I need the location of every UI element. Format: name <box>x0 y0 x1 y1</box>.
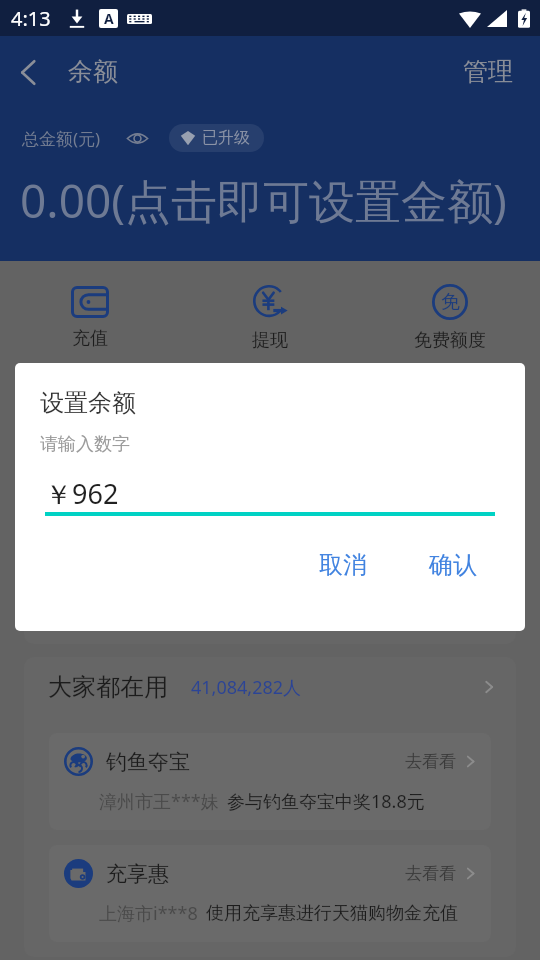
staticText: 钓鱼夺宝 <box>106 749 190 775</box>
button[interactable]: 大家都在用 <box>24 657 516 733</box>
staticText: 漳州市王***妹 <box>99 789 219 814</box>
button[interactable]: 充享惠 <box>49 845 491 942</box>
staticText: A <box>104 9 114 28</box>
staticText: 大家都在用 <box>48 672 168 702</box>
staticText: 已升级 <box>202 128 250 148</box>
button[interactable]: 提现 <box>180 267 360 353</box>
staticText: 取消 <box>319 550 367 580</box>
staticText: 0.00(点击即可设置金额) <box>20 169 507 232</box>
staticText: 充值 <box>72 327 108 350</box>
staticText: 参与钓鱼夺宝中奖18.8元 <box>227 789 425 814</box>
staticText: 上海市i***8 <box>99 901 198 926</box>
button[interactable]: 确认 <box>415 542 491 588</box>
staticText: 免费额度 <box>414 329 486 352</box>
staticText: 去看看 <box>405 751 456 772</box>
staticText: 余额 <box>68 56 118 87</box>
button[interactable]: 免 <box>360 266 540 353</box>
staticText: 管理 <box>463 56 513 87</box>
staticText: 41,084,282人 <box>191 675 302 700</box>
staticText: 免 <box>441 290 460 314</box>
staticText: 确认 <box>429 550 477 580</box>
staticText: 总金额(元) <box>22 127 101 150</box>
staticText: 4:13 <box>11 5 51 32</box>
staticText: 充享惠 <box>106 861 169 887</box>
staticText: 请输入数字 <box>40 433 130 456</box>
staticText: 去看看 <box>405 863 456 884</box>
button[interactable]: 钓鱼夺宝 <box>49 733 491 830</box>
staticText: 提现 <box>252 329 288 352</box>
staticText: 使用充享惠进行天猫购物金充值 <box>206 902 458 925</box>
button[interactable]: 管理 <box>436 42 540 101</box>
staticText: ￥962 <box>45 475 119 512</box>
button[interactable]: Toggle visibility <box>125 126 149 150</box>
button[interactable]: 已升级 <box>169 124 264 152</box>
staticText: 设置余额 <box>40 388 136 418</box>
button[interactable]: 取消 <box>305 542 381 588</box>
button[interactable]: Back <box>0 44 56 100</box>
button[interactable]: 充值 <box>0 268 180 351</box>
